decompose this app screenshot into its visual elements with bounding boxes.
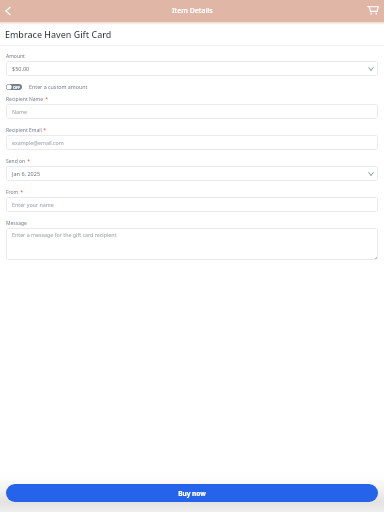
button[interactable]: Enter a message for the gift card recipi… <box>6 228 378 260</box>
staticText: Buy now <box>178 489 206 498</box>
staticText: Message <box>6 220 27 226</box>
staticText: Enter your name <box>12 201 54 208</box>
staticText: Amount <box>6 53 25 59</box>
staticText: Jan 6, 2025 <box>12 170 41 177</box>
staticText: * <box>26 158 31 164</box>
staticText: Item Details <box>172 6 213 16</box>
staticText: Embrace Haven Gift Card <box>5 28 112 40</box>
button[interactable]: Enter your name <box>6 197 378 212</box>
button[interactable]: example@email.com <box>6 135 378 150</box>
staticText: * <box>42 127 47 133</box>
staticText: Recipient Email <box>6 127 42 133</box>
staticText: OFF <box>13 85 21 90</box>
button[interactable]: $50.00 <box>6 61 378 76</box>
staticText: Send on <box>6 158 26 164</box>
staticText: Enter a message for the gift card recipi… <box>12 231 117 238</box>
staticText: From <box>6 189 19 195</box>
button[interactable]: Jan 6, 2025 <box>6 166 378 181</box>
staticText: Name <box>12 108 27 115</box>
staticText: Recipient Name <box>6 96 44 102</box>
staticText: * <box>19 189 24 195</box>
staticText: $50.00 <box>12 65 30 72</box>
staticText: example@email.com <box>12 139 64 146</box>
button[interactable]: Shopping cart <box>366 4 380 18</box>
button[interactable]: Custom amount toggle, off <box>6 84 22 90</box>
button[interactable]: Back <box>1 4 15 18</box>
button[interactable]: Buy now <box>6 484 378 502</box>
staticText: * <box>44 96 49 102</box>
staticText: Enter a custom amount <box>29 83 88 90</box>
button[interactable]: Name <box>6 104 378 119</box>
